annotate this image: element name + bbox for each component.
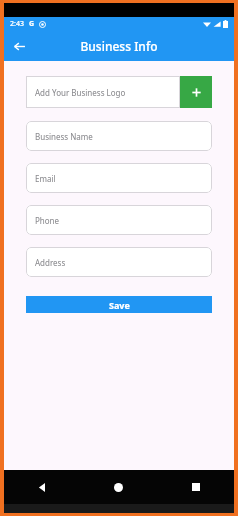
staticText: Phone [35, 215, 60, 226]
staticText: 2:43 [10, 19, 24, 29]
button[interactable]: Home [80, 470, 157, 504]
button[interactable]: Phone [26, 205, 212, 235]
button[interactable]: Back [4, 31, 34, 61]
button[interactable]: Business Name [26, 121, 212, 151]
button[interactable]: Add logo [180, 76, 212, 108]
button[interactable]: Add Your Business Logo [26, 76, 180, 108]
button[interactable]: Email [26, 163, 212, 193]
staticText: Address [35, 257, 66, 268]
staticText: Email [35, 173, 56, 184]
button[interactable]: Address [26, 247, 212, 277]
button[interactable]: Recent apps [157, 470, 234, 504]
staticText: G [29, 19, 35, 29]
button[interactable]: Back [4, 470, 80, 504]
staticText: Business Info [80, 38, 158, 54]
button[interactable]: Save [26, 296, 212, 313]
staticText: Business Name [35, 131, 93, 142]
staticText: Add Your Business Logo [35, 87, 126, 98]
staticText: Save [109, 299, 130, 311]
